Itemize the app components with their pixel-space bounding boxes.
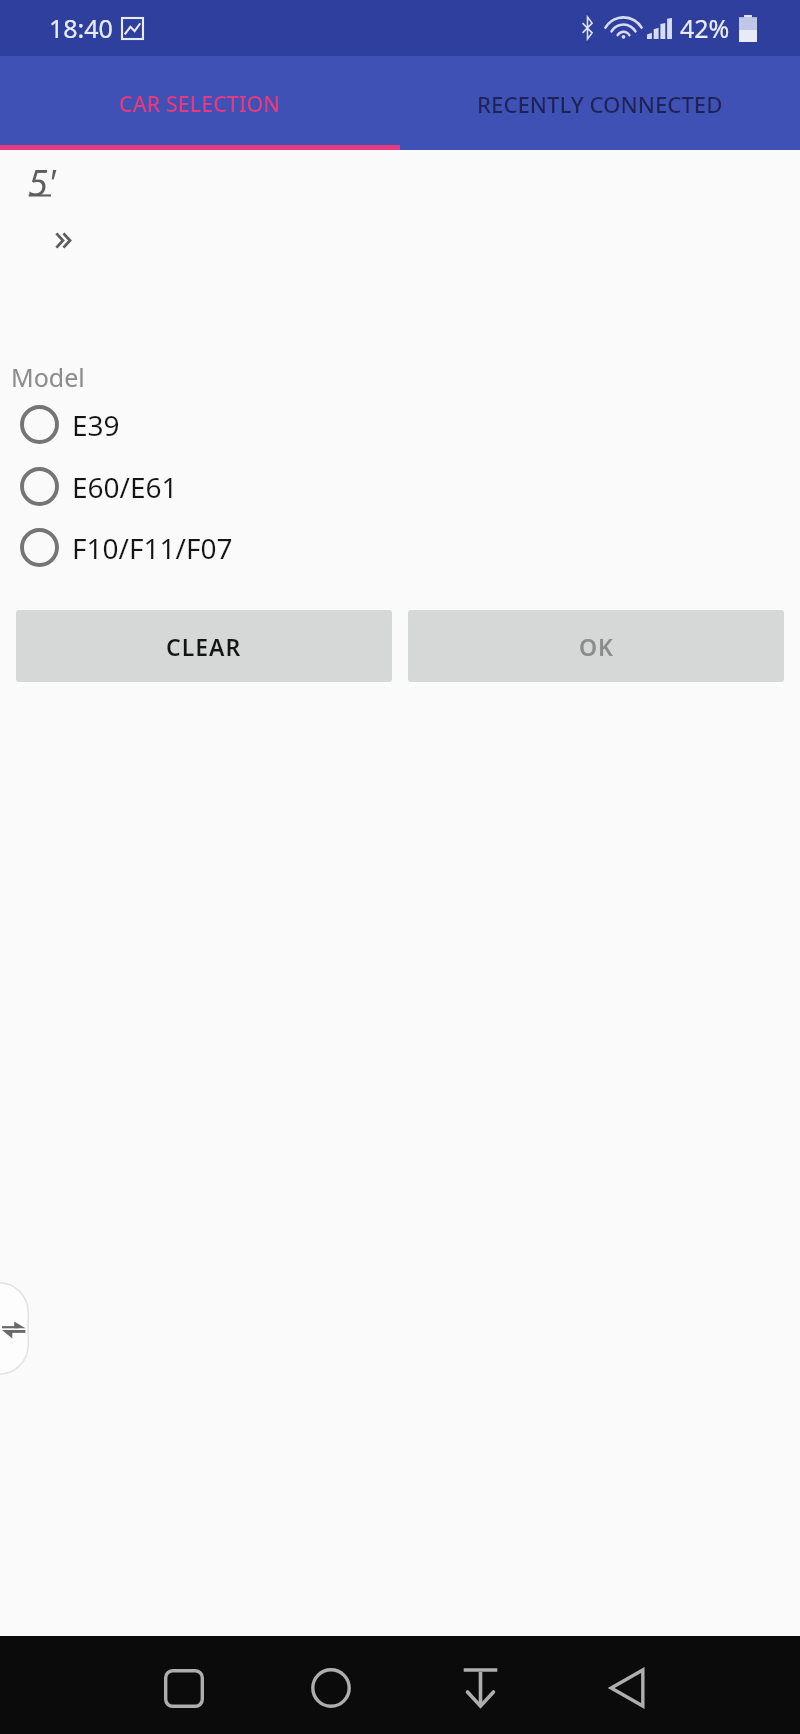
button[interactable]: Switch sides (0, 1282, 29, 1375)
staticText: OK (579, 631, 614, 662)
button[interactable]: E60/E61 (0, 456, 800, 517)
staticText: 18:40 (49, 11, 113, 45)
button[interactable]: F10/F11/F07 (0, 517, 800, 578)
button[interactable]: CAR SELECTION (0, 56, 400, 145)
staticText: CLEAR (166, 631, 242, 662)
staticText: E39 (72, 406, 120, 444)
button[interactable]: Back (590, 1651, 664, 1725)
staticText: F10/F11/F07 (72, 529, 233, 567)
staticText: Model (11, 360, 85, 394)
staticText: E60/E61 (72, 468, 178, 506)
staticText: 42% (680, 11, 730, 45)
staticText: CAR SELECTION (119, 89, 281, 118)
staticText: RECENTLY CONNECTED (477, 89, 723, 119)
button[interactable]: OK (408, 610, 784, 682)
button[interactable]: Hide navigation bar (443, 1651, 517, 1725)
staticText: 5' (28, 158, 56, 207)
button[interactable]: Home (294, 1651, 368, 1725)
button[interactable]: 5' (28, 158, 62, 210)
button[interactable]: CLEAR (16, 610, 392, 682)
button[interactable]: Recents (147, 1651, 221, 1725)
button[interactable]: E39 (0, 394, 800, 455)
button[interactable]: RECENTLY CONNECTED (400, 56, 800, 145)
